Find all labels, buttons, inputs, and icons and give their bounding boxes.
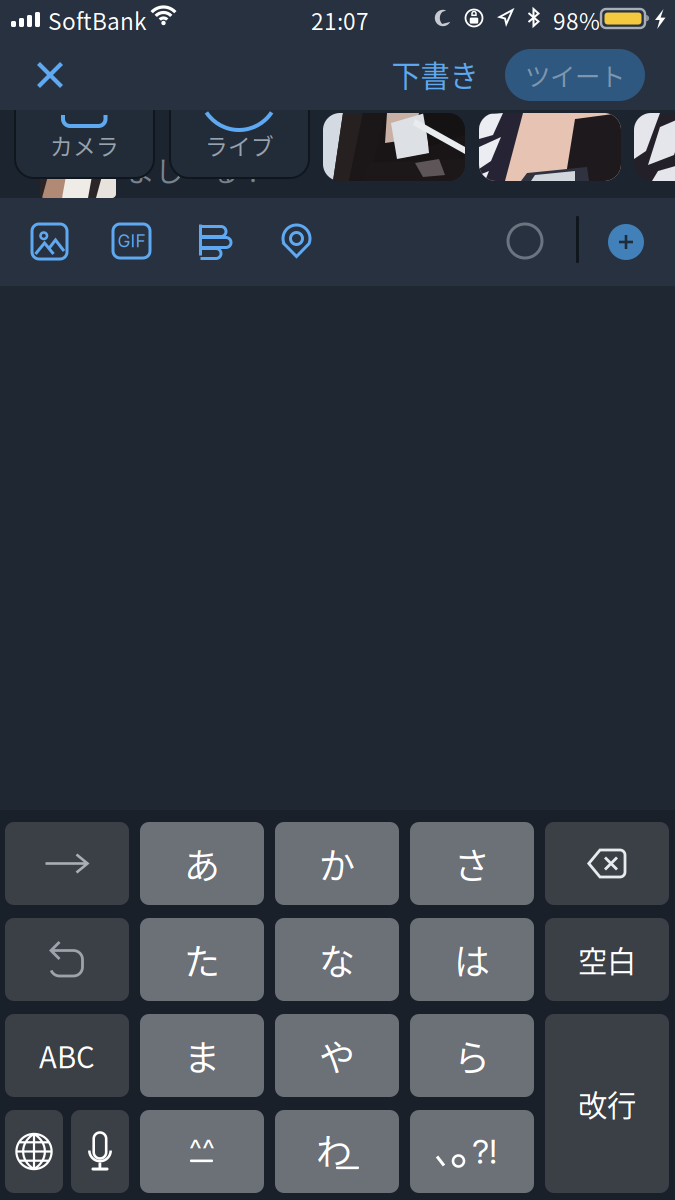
button[interactable]: さ	[410, 822, 534, 905]
button[interactable]: Add poll	[187, 212, 247, 270]
staticText: た	[184, 933, 220, 985]
button[interactable]: ライブ	[170, 48, 309, 178]
staticText: 21:07	[311, 4, 369, 36]
staticText: よし る！	[127, 150, 267, 190]
button[interactable]: Photo	[323, 113, 465, 181]
staticText: あ	[184, 837, 220, 889]
staticText: SoftBank	[48, 4, 147, 36]
staticText: GIF	[117, 230, 145, 251]
staticText: や	[319, 1029, 355, 1081]
button[interactable]: 空白	[545, 918, 669, 1001]
button[interactable]: な	[275, 918, 399, 1001]
staticText: ライブ	[205, 129, 274, 161]
button[interactable]: Punctuation	[410, 1110, 534, 1193]
button[interactable]: Next candidate	[5, 822, 129, 905]
button[interactable]: wa	[275, 1110, 399, 1193]
staticText: ツイート	[525, 57, 625, 93]
staticText: 改行	[578, 1082, 636, 1125]
button[interactable]: Photo	[634, 113, 675, 181]
staticText: 空白	[578, 938, 636, 981]
button[interactable]: あ	[140, 822, 264, 905]
button[interactable]: は	[410, 918, 534, 1001]
button[interactable]: Close	[13, 40, 87, 110]
button[interactable]: カメラ	[15, 48, 154, 178]
button[interactable]: ら	[410, 1014, 534, 1097]
staticText: は	[454, 933, 490, 985]
button[interactable]: Add photo	[20, 212, 79, 271]
staticText: ABC	[39, 1034, 95, 1077]
staticText: 98%	[553, 4, 600, 36]
staticText: わ	[316, 1123, 352, 1175]
button[interactable]: 改行	[545, 1014, 669, 1193]
staticText: ?!	[472, 1131, 497, 1172]
button[interactable]: 下書き	[380, 39, 490, 109]
staticText: な	[319, 933, 355, 985]
staticText: カメラ	[50, 129, 119, 161]
button[interactable]: ま	[140, 1014, 264, 1097]
button[interactable]: Add another tweet	[600, 216, 652, 268]
staticText: か	[319, 837, 355, 889]
staticText: ま	[184, 1029, 220, 1081]
button[interactable]: た	[140, 918, 264, 1001]
button[interactable]: ツイート	[505, 49, 645, 101]
button[interactable]: Emoticons	[140, 1110, 264, 1193]
button[interactable]: や	[275, 1014, 399, 1097]
button[interactable]: Dictation	[71, 1110, 129, 1193]
staticText: さ	[454, 837, 490, 889]
button[interactable]: Delete	[545, 822, 669, 905]
button[interactable]: Photo	[479, 113, 621, 181]
button[interactable]: Switch keyboard	[5, 1110, 63, 1193]
staticText: 下書き	[391, 53, 478, 95]
button[interactable]: Add GIF	[101, 212, 162, 270]
button[interactable]: ABC	[5, 1014, 129, 1097]
button[interactable]: Tag location	[269, 212, 324, 270]
staticText: ^^	[189, 1132, 215, 1165]
button[interactable]: Undo	[5, 918, 129, 1001]
button[interactable]: か	[275, 822, 399, 905]
staticText: ら	[454, 1029, 490, 1081]
